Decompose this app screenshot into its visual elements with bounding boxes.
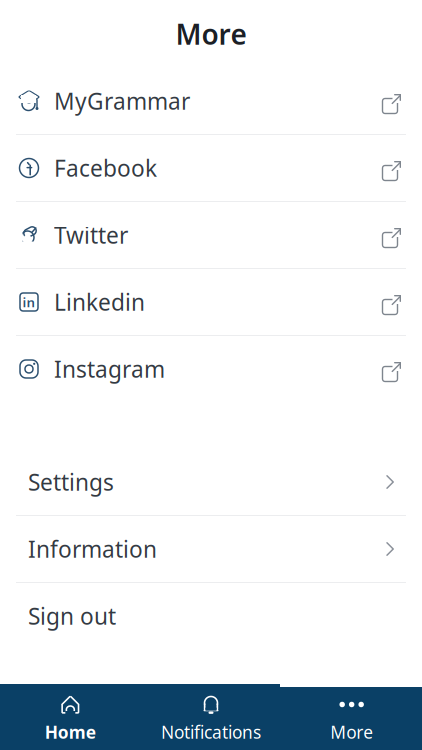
button[interactable]: in [0, 269, 422, 335]
button[interactable]: Twitter [0, 202, 422, 268]
staticText: More [330, 720, 373, 743]
staticText: in [22, 293, 35, 311]
staticText: Notifications [161, 720, 261, 743]
button[interactable]: Settings [0, 449, 422, 515]
staticText: Linkedin [54, 287, 145, 317]
staticText: Information [28, 534, 157, 564]
staticText: Home [45, 720, 96, 743]
button[interactable]: Facebook [0, 135, 422, 201]
button[interactable]: Notifications [141, 687, 281, 750]
button[interactable]: Instagram [0, 336, 422, 402]
button[interactable]: Home [0, 687, 141, 750]
staticText: Settings [28, 467, 114, 497]
staticText: MyGrammar [54, 86, 190, 116]
button[interactable]: More [281, 687, 422, 750]
staticText: Sign out [28, 601, 116, 631]
button[interactable]: Sign out [0, 583, 422, 649]
staticText: More [175, 15, 246, 53]
staticText: Facebook [54, 153, 157, 183]
button[interactable]: Information [0, 516, 422, 582]
button[interactable]: MyGrammar [0, 68, 422, 134]
staticText: Twitter [54, 220, 128, 250]
staticText: Instagram [54, 354, 165, 384]
